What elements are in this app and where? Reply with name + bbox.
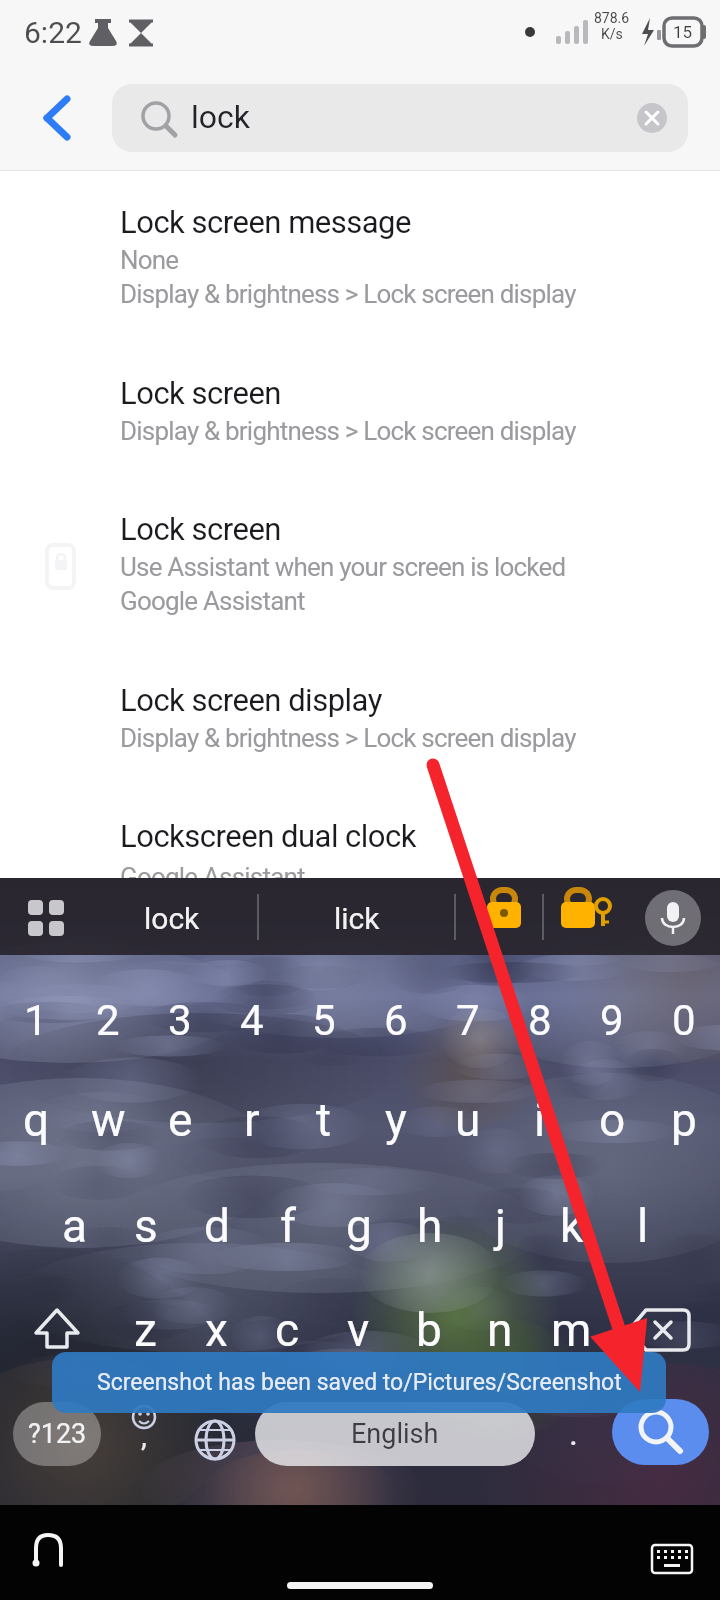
staticText: 878.6 <box>594 10 630 26</box>
staticText: Display & brightness > Lock screen displ… <box>120 279 576 309</box>
button[interactable]: y <box>361 1090 431 1150</box>
button[interactable]: Lock screen display <box>0 670 720 774</box>
staticText: Google Assistant <box>120 862 305 892</box>
button[interactable]: English <box>255 1402 535 1466</box>
staticText: 7 <box>456 996 480 1045</box>
button[interactable]: t <box>289 1090 359 1150</box>
staticText: None <box>120 245 179 275</box>
button[interactable] <box>120 1400 170 1466</box>
button[interactable]: j <box>466 1196 536 1256</box>
button[interactable] <box>618 1300 698 1360</box>
button[interactable]: lock <box>112 84 688 152</box>
button[interactable]: lick <box>277 888 437 948</box>
button[interactable]: 6 <box>361 990 431 1050</box>
button[interactable]: 9 <box>577 990 647 1050</box>
button[interactable]: v <box>323 1300 393 1360</box>
button[interactable]: 4 <box>217 990 287 1050</box>
button[interactable]: 3 <box>145 990 215 1050</box>
staticText: 9 <box>600 996 624 1045</box>
button[interactable]: 8 <box>505 990 575 1050</box>
staticText: w <box>91 1093 126 1147</box>
staticText: s <box>134 1199 158 1253</box>
button[interactable]: m <box>536 1300 606 1360</box>
button[interactable]: 1 <box>1 990 71 1050</box>
button[interactable]: l <box>608 1196 678 1256</box>
button[interactable]: c <box>252 1300 322 1360</box>
button[interactable] <box>622 88 682 148</box>
staticText: u <box>455 1093 481 1147</box>
button[interactable]: b <box>394 1300 464 1360</box>
staticText: m <box>551 1303 592 1357</box>
button[interactable]: o <box>577 1090 647 1150</box>
button[interactable]: d <box>182 1196 252 1256</box>
button[interactable] <box>551 886 613 948</box>
staticText: e <box>168 1093 193 1147</box>
button[interactable]: i <box>505 1090 575 1150</box>
staticText: Google Assistant <box>120 586 305 616</box>
button[interactable]: x <box>181 1300 251 1360</box>
staticText: Display & brightness > Lock screen displ… <box>120 723 576 753</box>
staticText: d <box>204 1199 230 1253</box>
button[interactable]: ?123 <box>13 1402 101 1466</box>
button[interactable]: g <box>324 1196 394 1256</box>
staticText: lock <box>144 901 200 936</box>
button[interactable]: Lock screen message <box>0 192 720 330</box>
button[interactable]: q <box>1 1090 71 1150</box>
button[interactable]: Lock screen <box>0 363 720 467</box>
staticText: Display & brightness > Lock screen displ… <box>120 416 576 446</box>
button[interactable] <box>612 1399 709 1465</box>
button[interactable]: 2 <box>73 990 143 1050</box>
staticText: 8 <box>528 996 552 1045</box>
button[interactable] <box>473 886 535 948</box>
button[interactable]: 0 <box>649 990 719 1050</box>
staticText: j <box>495 1199 507 1253</box>
button[interactable] <box>16 888 76 948</box>
button[interactable]: Lock screen <box>0 499 720 637</box>
button[interactable]: lock <box>92 888 252 948</box>
button[interactable] <box>640 1535 700 1580</box>
button[interactable] <box>20 1530 80 1580</box>
button[interactable]: n <box>465 1300 535 1360</box>
button[interactable]: p <box>649 1090 719 1150</box>
button[interactable]: u <box>433 1090 503 1150</box>
button[interactable]: h <box>395 1196 465 1256</box>
staticText: b <box>416 1303 442 1357</box>
staticText: 3 <box>168 996 192 1045</box>
staticText: n <box>487 1303 513 1357</box>
button[interactable] <box>0 171 720 878</box>
staticText: English <box>351 1418 439 1450</box>
button[interactable] <box>280 1575 440 1597</box>
button[interactable]: , <box>122 1407 166 1463</box>
button[interactable]: s <box>111 1196 181 1256</box>
button[interactable]: 7 <box>433 990 503 1050</box>
button[interactable]: a <box>40 1196 110 1256</box>
staticText: 5 <box>312 996 336 1045</box>
staticText: f <box>280 1199 296 1253</box>
button[interactable] <box>28 88 86 148</box>
staticText: 1 <box>24 996 48 1045</box>
staticText: x <box>205 1303 228 1357</box>
staticText: 2 <box>96 996 120 1045</box>
button[interactable]: r <box>217 1090 287 1150</box>
button[interactable] <box>643 888 703 948</box>
button[interactable] <box>190 1405 242 1467</box>
staticText: a <box>62 1199 88 1253</box>
staticText: i <box>534 1093 546 1147</box>
staticText: y <box>385 1093 407 1147</box>
button[interactable]: Lockscreen dual clock <box>0 806 720 916</box>
button[interactable]: e <box>145 1090 215 1150</box>
staticText: l <box>637 1199 649 1253</box>
button[interactable]: k <box>537 1196 607 1256</box>
staticText: p <box>671 1093 697 1147</box>
staticText: o <box>599 1093 626 1147</box>
button[interactable]: 5 <box>289 990 359 1050</box>
button[interactable]: f <box>253 1196 323 1256</box>
staticText: h <box>417 1199 443 1253</box>
button[interactable] <box>25 1300 90 1360</box>
button[interactable]: w <box>73 1090 143 1150</box>
staticText: Lock screen display <box>120 682 382 718</box>
button[interactable]: z <box>110 1300 180 1360</box>
staticText: lock <box>191 98 250 136</box>
button[interactable]: . <box>551 1405 595 1461</box>
staticText: z <box>134 1303 157 1357</box>
